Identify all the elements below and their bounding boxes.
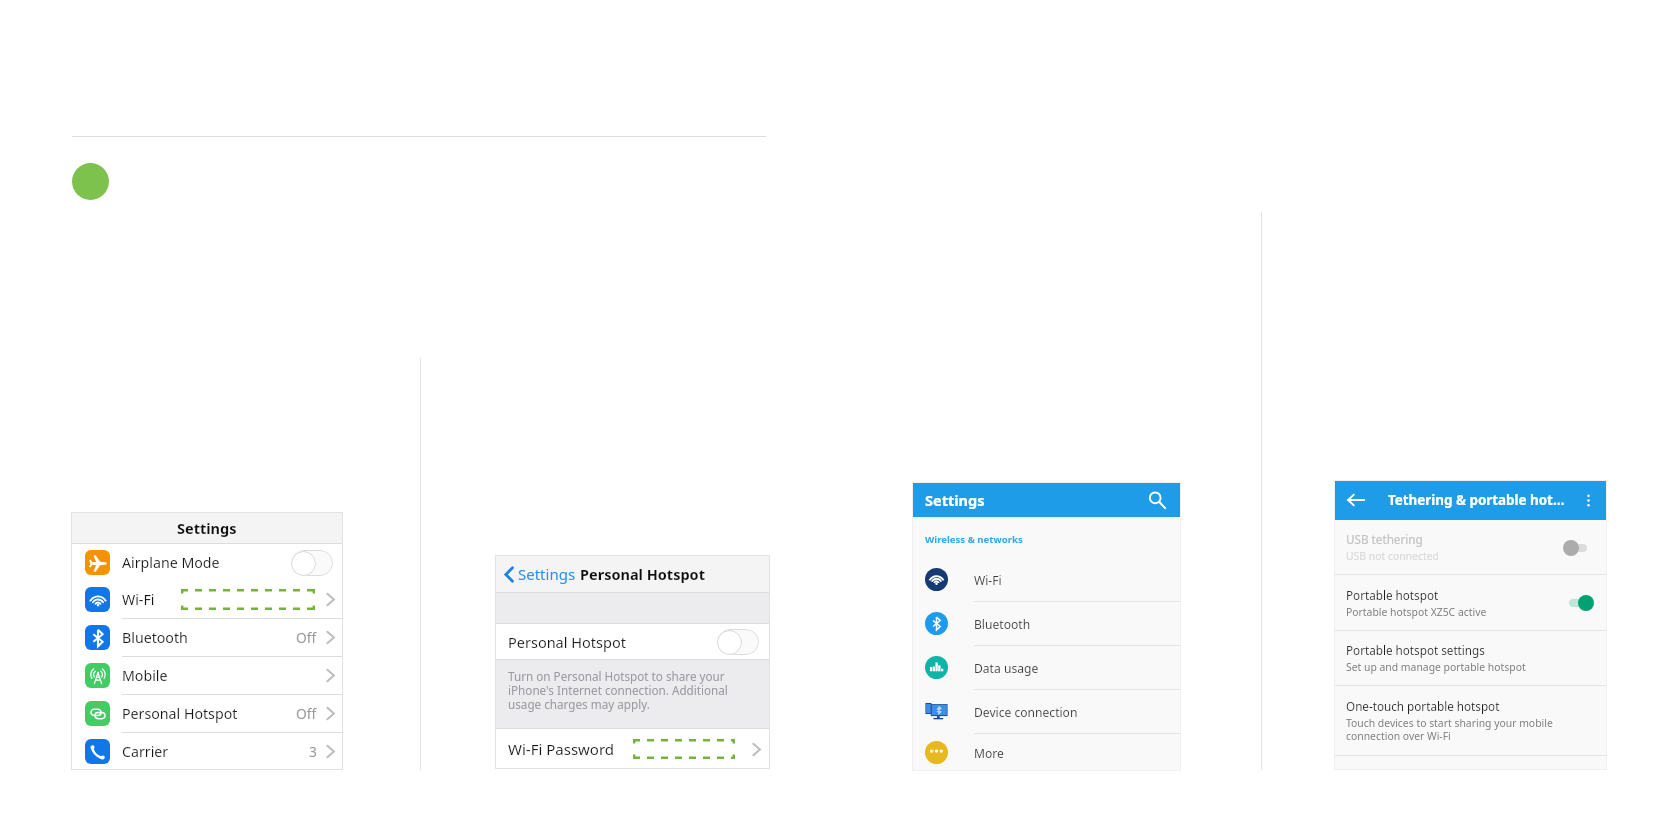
staticText: One-touch portable hotspot	[1346, 698, 1500, 714]
button[interactable]: USB tethering toggle off	[1563, 539, 1594, 556]
staticText: Off	[296, 704, 317, 723]
staticText: Touch devices to start sharing your mobi…	[1346, 716, 1594, 743]
button[interactable]: Portable hotspot settings	[1334, 630, 1607, 685]
button[interactable]: Data usage	[912, 645, 1181, 689]
staticText: Personal Hotspot	[122, 704, 238, 723]
button[interactable]: Airplane Mode toggle	[291, 550, 333, 576]
staticText: Device connection	[974, 704, 1078, 720]
staticText: Off	[296, 628, 317, 647]
staticText: USB not connected	[1346, 549, 1439, 563]
staticText: Settings	[925, 490, 985, 510]
staticText: Airplane Mode	[122, 553, 220, 572]
button[interactable]: Wi-Fi	[71, 581, 343, 618]
staticText: Personal Hotspot	[580, 564, 705, 584]
button[interactable]: Device connection	[912, 689, 1181, 733]
button[interactable]: Carrier	[71, 732, 343, 770]
button[interactable]: Settings	[504, 564, 576, 584]
staticText: Mobile	[122, 666, 168, 685]
staticText: Carrier	[122, 742, 169, 761]
staticText: More	[974, 745, 1004, 761]
button[interactable]: Back	[1344, 488, 1368, 512]
button[interactable]: Personal Hotspot toggle	[717, 629, 759, 655]
staticText: Portable hotspot XZ5C active	[1346, 605, 1487, 619]
button[interactable]: Portable hotspot	[1334, 574, 1607, 630]
button[interactable]: One-touch portable hotspot	[1334, 685, 1607, 755]
staticText: 3	[309, 742, 317, 761]
button[interactable]: Mobile	[71, 656, 343, 694]
staticText: Data usage	[974, 660, 1039, 676]
button[interactable]: Wi-Fi	[912, 558, 1181, 601]
staticText: USB tethering	[1346, 531, 1423, 547]
staticText: Tethering & portable hot…	[1388, 491, 1565, 509]
button[interactable]: Wi-Fi Password	[508, 729, 761, 769]
staticText: Personal Hotspot	[508, 632, 626, 652]
button[interactable]: USB tethering	[1334, 520, 1607, 574]
button[interactable]: Bluetooth	[71, 618, 343, 656]
button[interactable]: Airplane Mode	[71, 544, 343, 581]
staticText: Bluetooth	[122, 628, 188, 647]
button[interactable]: Search	[1145, 488, 1169, 512]
button[interactable]: Personal Hotspot	[71, 694, 343, 732]
button[interactable]: More options	[1578, 490, 1598, 510]
button[interactable]: More	[912, 733, 1181, 771]
button[interactable]: Portable hotspot toggle on	[1563, 594, 1594, 611]
staticText: Wi-Fi	[122, 590, 155, 609]
staticText: Portable hotspot settings	[1346, 642, 1485, 658]
staticText: Wireless & networks	[925, 533, 1023, 546]
staticText: Portable hotspot	[1346, 587, 1439, 603]
button[interactable]: Personal Hotspot	[508, 624, 759, 659]
staticText: Wi-Fi	[974, 572, 1002, 588]
staticText: Bluetooth	[974, 616, 1031, 632]
staticText: Settings	[518, 564, 576, 584]
staticText: Wi-Fi Password	[508, 739, 615, 759]
staticText: Turn on Personal Hotspot to share your i…	[508, 668, 760, 713]
staticText: Settings	[177, 518, 237, 538]
staticText: Set up and manage portable hotspot	[1346, 660, 1526, 674]
button[interactable]: Bluetooth	[912, 601, 1181, 645]
